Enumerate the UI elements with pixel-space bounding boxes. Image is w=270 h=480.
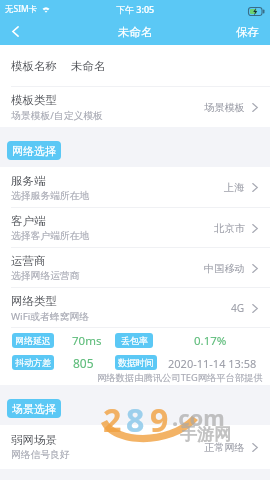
staticText: 场景模板/自定义模板	[11, 109, 103, 122]
staticText: 运营商	[11, 254, 46, 268]
staticText: 网络选择	[12, 144, 56, 158]
staticText: 2	[103, 398, 122, 442]
staticText: 客户端	[11, 214, 46, 228]
staticText: 网络数据由腾讯公司TEG网络平台部提供	[97, 371, 263, 384]
staticText: 中国移动	[204, 262, 245, 275]
staticText: 8	[126, 398, 145, 442]
button[interactable]: 网络类型	[0, 288, 270, 328]
button[interactable]: 弱网场景	[0, 425, 270, 469]
button[interactable]: 场景选择	[7, 399, 61, 418]
staticText: 弱网场景	[11, 433, 57, 447]
staticText: 4G	[231, 301, 245, 315]
staticText: 选择客户端所在地	[11, 230, 90, 242]
staticText: 场景选择	[12, 402, 56, 416]
staticText: 2020-11-14 13:58	[168, 356, 257, 371]
staticText: 抖动方差	[15, 357, 51, 368]
staticText: 服务端	[11, 174, 46, 188]
staticText: 下午 3:05	[116, 3, 155, 15]
staticText: 0.17%	[194, 333, 227, 349]
staticText: 模板名称	[11, 59, 57, 73]
button[interactable]: 服务端	[0, 167, 270, 208]
staticText: 模板类型	[11, 93, 57, 107]
staticText: 70ms	[72, 333, 102, 349]
staticText: 北京市	[214, 222, 245, 235]
staticText: 数据时间	[118, 357, 154, 368]
staticText: 上海	[224, 181, 245, 194]
staticText: 手游网	[180, 424, 231, 445]
button[interactable]: 模板名称	[0, 45, 270, 87]
staticText: 网络信号良好	[11, 449, 70, 461]
staticText: .com	[172, 402, 225, 432]
staticText: 选择服务端所在地	[11, 190, 90, 202]
staticText: 未命名	[118, 25, 153, 39]
button[interactable]: 模板类型	[0, 87, 270, 127]
staticText: 选择网络运营商	[11, 270, 80, 282]
staticText: WiFi或者蜂窝网络	[11, 310, 90, 323]
staticText: 未命名	[71, 59, 106, 73]
staticText: 805	[73, 355, 94, 371]
staticText: 网络类型	[11, 294, 57, 308]
staticText: 9	[150, 398, 169, 442]
staticText: 场景模板	[204, 101, 245, 114]
staticText: 网络延迟	[15, 335, 51, 346]
button[interactable]: 客户端	[0, 208, 270, 248]
button[interactable]: 运营商	[0, 248, 270, 288]
staticText: 丢包率	[121, 335, 148, 346]
staticText: 正常网络	[204, 441, 245, 454]
button[interactable]: 保存	[225, 18, 270, 45]
button[interactable]: 返回	[0, 18, 30, 45]
button[interactable]: 网络选择	[7, 141, 61, 160]
staticText: 保存	[236, 25, 259, 39]
staticText: 无SIM卡	[5, 3, 38, 15]
